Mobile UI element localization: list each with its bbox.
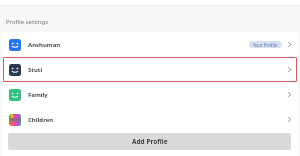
staticText: Add Profile	[132, 137, 168, 146]
button[interactable]: Anshuman	[3, 32, 297, 57]
other: Open	[287, 42, 292, 47]
button[interactable]: Stuti	[3, 57, 297, 82]
staticText: Your Profile	[253, 42, 278, 48]
other: Open	[287, 92, 292, 97]
staticText: Stuti	[28, 66, 43, 74]
staticText: Anshuman	[28, 41, 61, 49]
other: Open	[287, 67, 292, 72]
staticText: Family	[28, 91, 48, 99]
staticText: Profile settings	[6, 18, 49, 26]
button[interactable]: Children	[3, 107, 297, 132]
other: Open	[287, 117, 292, 122]
button[interactable]: Add Profile	[8, 133, 291, 150]
staticText: Children	[28, 116, 54, 124]
button[interactable]: Family	[3, 82, 297, 107]
